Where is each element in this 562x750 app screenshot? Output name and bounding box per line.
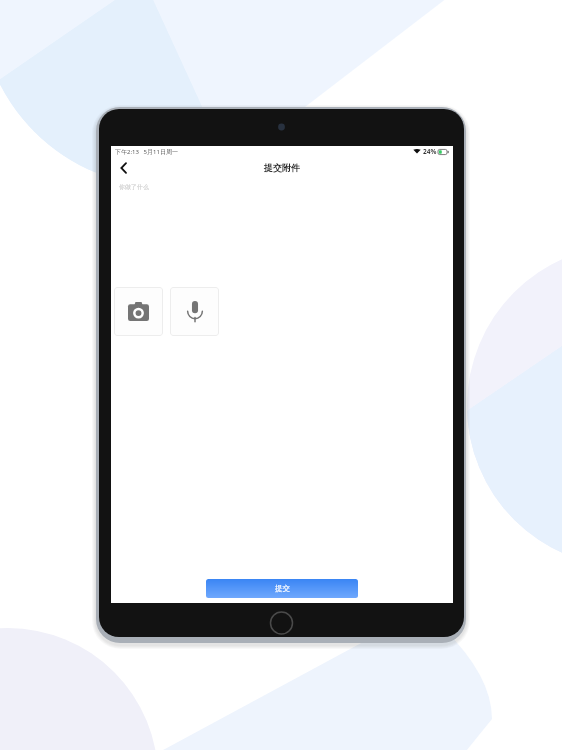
staticText: 下午2:13 5月11日周一 — [115, 148, 178, 156]
button[interactable]: Take photo — [114, 287, 163, 336]
button[interactable]: Back — [111, 157, 135, 178]
staticText: 提交附件 — [264, 162, 300, 173]
button[interactable]: Record audio — [170, 287, 219, 336]
staticText: 你做了什么 — [119, 183, 149, 191]
staticText: 提交 — [275, 584, 290, 593]
staticText: 24% — [423, 147, 437, 156]
button[interactable]: 提交 — [206, 579, 358, 598]
